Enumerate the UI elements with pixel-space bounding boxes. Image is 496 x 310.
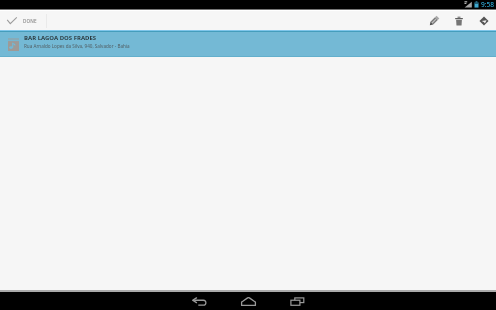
button[interactable]: Edit — [421, 11, 446, 30]
button[interactable]: Back — [184, 292, 214, 310]
button[interactable]: Home — [233, 292, 263, 310]
button[interactable]: Navigate — [471, 11, 496, 30]
staticText: DONE — [23, 18, 37, 24]
button[interactable]: Delete — [446, 11, 471, 30]
staticText: BAR LAGOA DOS FRADES — [24, 34, 97, 42]
staticText: Rua Arnaldo Lopes da Silva, 940, Salvado… — [24, 43, 130, 49]
button[interactable]: DONE — [0, 11, 46, 30]
button[interactable]: Recents — [282, 292, 312, 310]
staticText: 9:58 — [481, 0, 495, 9]
button[interactable]: BAR LAGOA DOS FRADES — [0, 30, 496, 57]
